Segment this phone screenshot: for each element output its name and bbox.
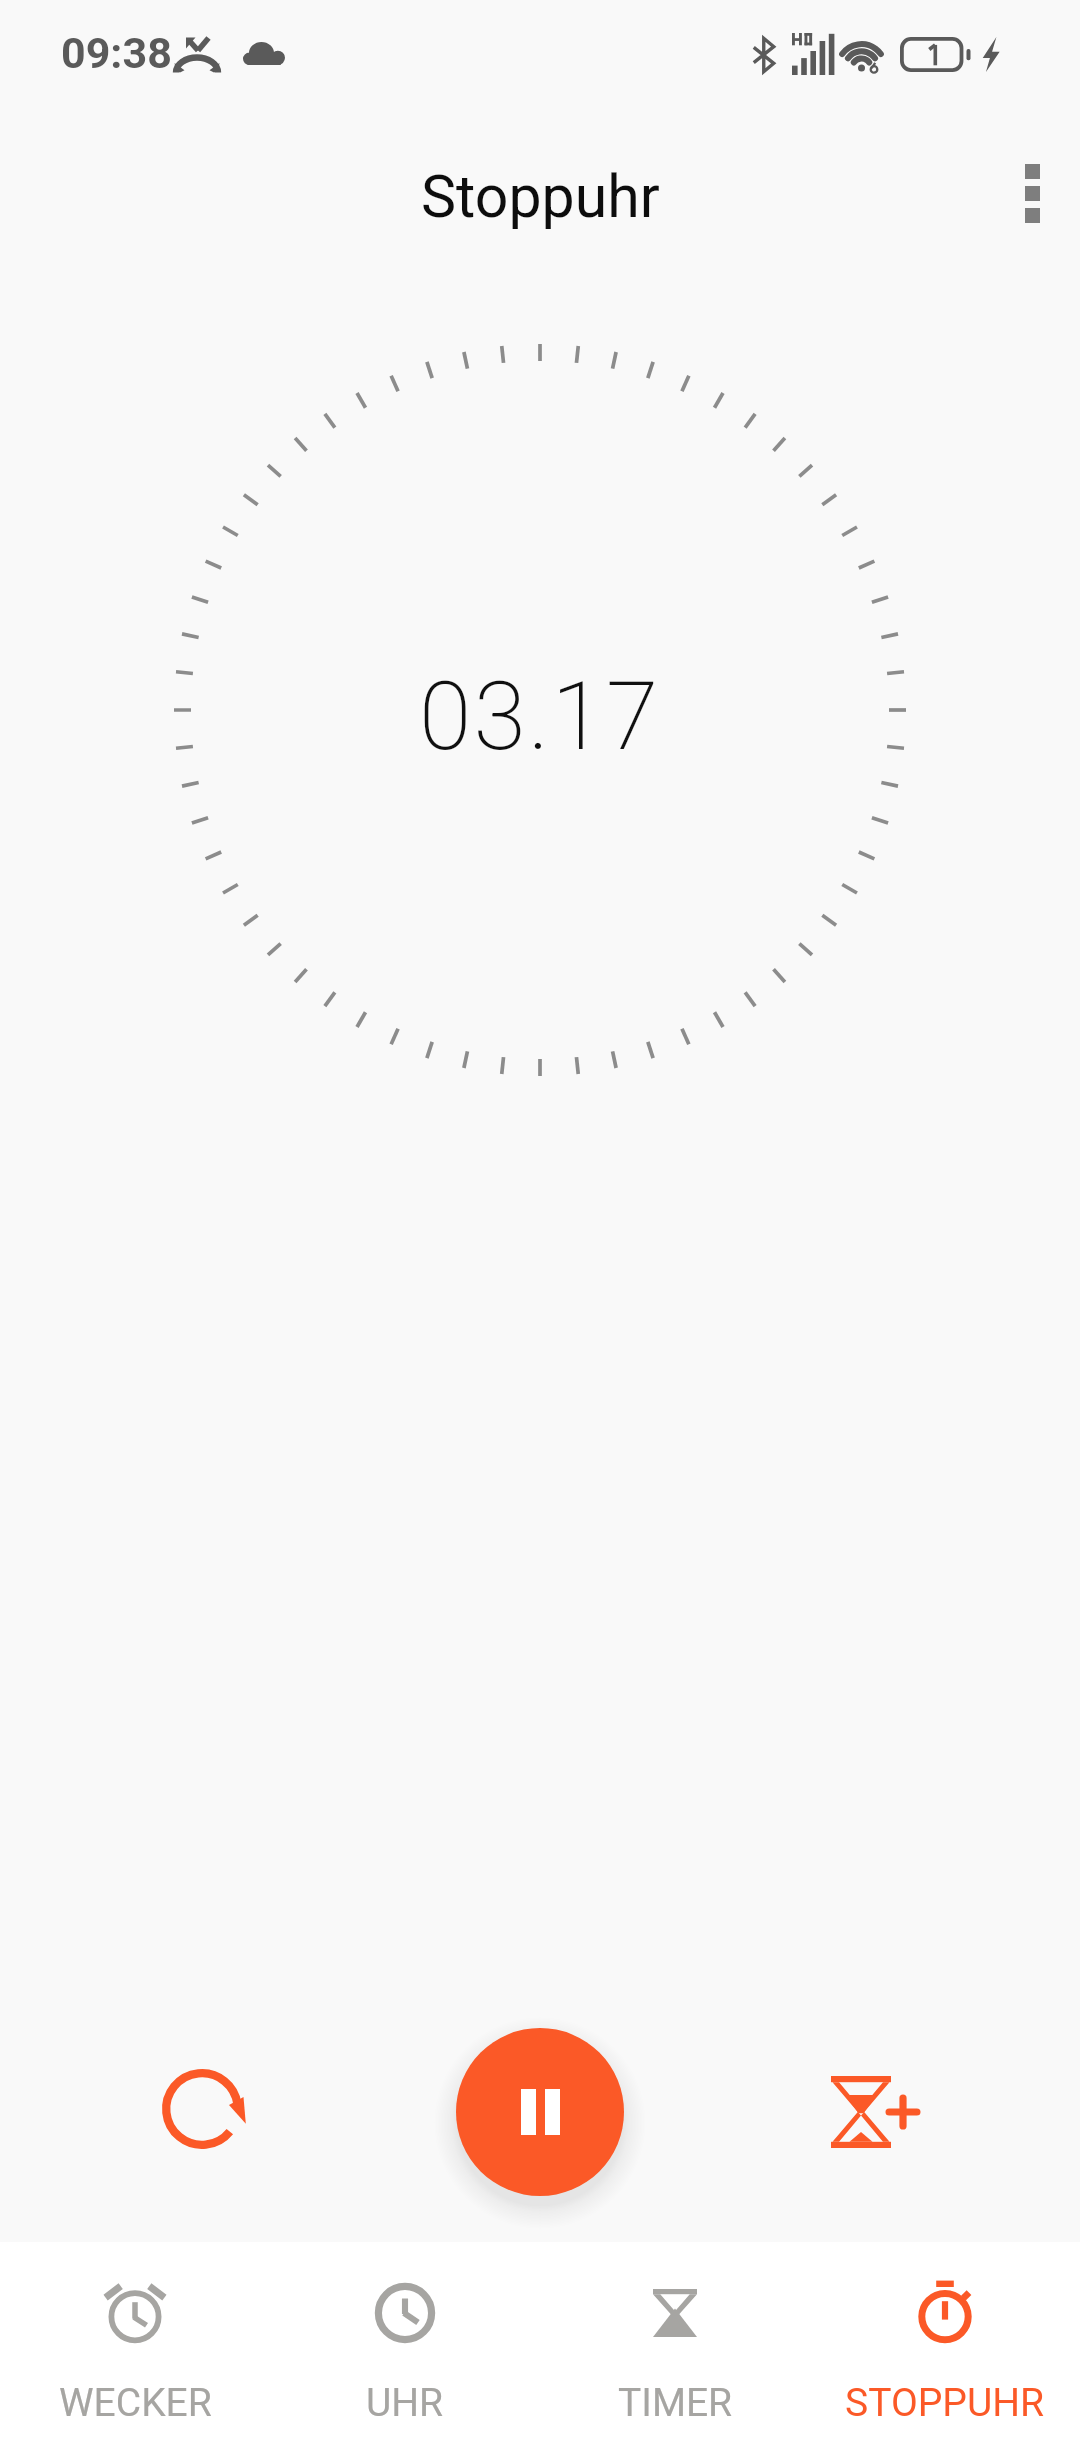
staticText: Stoppuhr: [421, 162, 660, 231]
button[interactable]: Add lap: [796, 2032, 956, 2192]
button[interactable]: Pause: [456, 2028, 624, 2196]
button[interactable]: UHR: [270, 2242, 540, 2460]
staticText: STOPPUHR: [845, 2380, 1045, 2426]
button[interactable]: WECKER: [0, 2242, 270, 2460]
button[interactable]: STOPPUHR: [810, 2242, 1080, 2460]
staticText: UHR: [366, 2380, 444, 2426]
button[interactable]: More options: [987, 148, 1077, 238]
staticText: 03.17: [419, 661, 661, 772]
staticText: TIMER: [618, 2380, 733, 2426]
button[interactable]: TIMER: [540, 2242, 810, 2460]
staticText: WECKER: [59, 2380, 212, 2426]
button[interactable]: Reset: [122, 2030, 282, 2190]
staticText: 09:38: [61, 28, 172, 78]
